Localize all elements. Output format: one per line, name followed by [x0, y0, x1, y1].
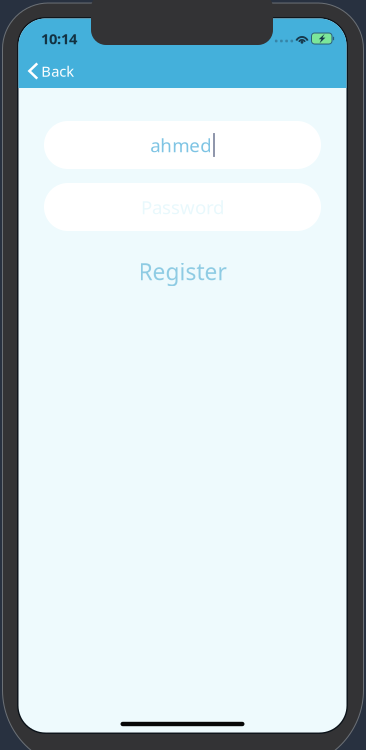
staticText: 10:14 — [41, 29, 77, 48]
staticText: Back — [41, 61, 74, 81]
staticText: Password — [141, 195, 224, 219]
button[interactable]: Register — [82, 251, 282, 291]
button[interactable]: Back — [19, 52, 86, 90]
staticText: Register — [138, 256, 226, 286]
staticText: ahmed — [150, 133, 211, 157]
